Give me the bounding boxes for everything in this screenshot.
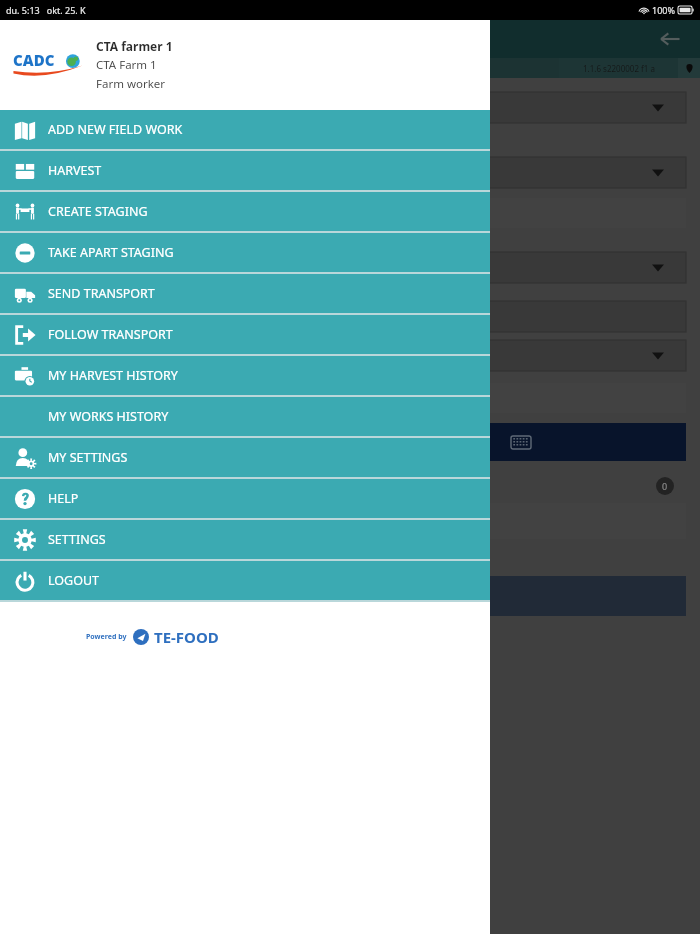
staticText: Powered by (86, 632, 127, 642)
staticText: SETTINGS (48, 531, 106, 548)
staticText: 100% (652, 4, 675, 16)
button[interactable]: HELP (0, 479, 490, 518)
staticText: MY WORKS HISTORY (48, 408, 169, 425)
button[interactable]: Back (656, 25, 684, 53)
staticText: SEND TRANSPORT (48, 285, 155, 302)
staticText: LOGOUT (48, 572, 100, 589)
staticText: 0 (662, 480, 668, 492)
button[interactable] (14, 576, 686, 616)
button[interactable]: MY SETTINGS (0, 438, 490, 477)
button[interactable]: TAKE APART STAGING (0, 233, 490, 272)
staticText: TAKE APART STAGING (48, 244, 174, 261)
button[interactable]: MY WORKS HISTORY (0, 397, 490, 436)
button[interactable]: LOGOUT (0, 561, 490, 600)
button[interactable]: Keyboard (355, 423, 686, 461)
button[interactable]: HARVEST (0, 151, 490, 190)
staticText: HARVEST (48, 162, 102, 179)
staticText: MY SETTINGS (48, 449, 128, 466)
button[interactable] (14, 340, 686, 371)
button[interactable]: 1.1.6 s2200002 f1 a (559, 58, 678, 78)
staticText: ADD NEW FIELD WORK (48, 121, 183, 138)
button[interactable]: FOLLOW TRANSPORT (0, 315, 490, 354)
button[interactable] (14, 157, 686, 188)
button[interactable]: HARVEST ONLY (14, 383, 686, 413)
staticText: FOLLOW TRANSPORT (48, 326, 173, 343)
staticText: CREATE STAGING (48, 203, 148, 220)
staticText: CTA Farm 1 (96, 57, 157, 73)
staticText: 1.1.6 s2200002 f1 a (583, 63, 655, 74)
staticText: HARVEST ONLY (24, 390, 110, 406)
staticText: du. 5:13 okt. 25. K (6, 4, 86, 16)
button[interactable]: Location (678, 58, 700, 78)
staticText: Fields marked with * are obligatory. (14, 551, 199, 566)
staticText: TE-FOOD (154, 627, 219, 647)
button[interactable]: CREATE STAGING (0, 192, 490, 231)
staticText: MY HARVEST HISTORY (48, 367, 178, 384)
button[interactable]: SETTINGS (0, 520, 490, 559)
staticText: HELP (48, 490, 79, 507)
button[interactable] (14, 503, 686, 539)
staticText: SCAN FIELD QR CODE (24, 205, 146, 221)
button[interactable]: SEND TRANSPORT (0, 274, 490, 313)
button[interactable]: MY HARVEST HISTORY (0, 356, 490, 395)
button[interactable] (14, 301, 686, 332)
button[interactable]: ADD NEW FIELD WORK (0, 110, 490, 149)
button[interactable] (14, 92, 686, 123)
staticText: Farm worker (96, 76, 166, 92)
staticText: CTA farmer 1 (96, 38, 173, 54)
button[interactable] (14, 252, 686, 283)
button[interactable]: SCAN FIELD QR CODE (14, 198, 686, 228)
staticText: CADC (13, 50, 55, 70)
button[interactable]: Scan (14, 423, 345, 461)
button[interactable]: 0 (14, 469, 686, 503)
